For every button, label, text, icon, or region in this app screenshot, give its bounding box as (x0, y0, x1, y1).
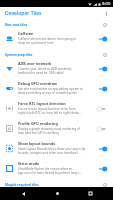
button[interactable]: Recents (80, 187, 100, 200)
staticText: Magisk required tiles (5, 183, 96, 187)
staticText: Debug GPU overdraw (18, 81, 58, 86)
staticText: Caffeine (18, 31, 34, 36)
button[interactable]: Info about System prop tiles (96, 50, 113, 60)
staticText: Developer Tiles (5, 10, 42, 17)
button[interactable]: Toggle (95, 124, 108, 133)
button[interactable]: Strict mode (0, 160, 113, 180)
staticText: StrictMode flashes the screen when an ap… (18, 167, 82, 175)
button[interactable]: Back (13, 187, 33, 200)
staticText: System prop tiles (5, 53, 96, 57)
staticText: Display a graph showing visual rendering… (18, 127, 80, 135)
staticText: Forces screen layout direction to be fro… (18, 107, 82, 115)
button[interactable]: Toggle (95, 64, 108, 73)
staticText: Profile GPU rendering (18, 121, 58, 126)
button[interactable]: More options (100, 7, 113, 20)
button[interactable]: Home (47, 187, 67, 200)
button[interactable]: Toggle (95, 164, 108, 173)
button[interactable]: Caffeine (0, 30, 113, 50)
button[interactable]: Show layout bounds (0, 140, 113, 160)
staticText: Force RTL layout direction (18, 101, 66, 106)
staticText: Connect your device to ADB wirelessly (w… (18, 67, 72, 75)
staticText: Strict mode (18, 161, 40, 166)
button[interactable]: Profile GPU rendering (0, 120, 113, 140)
staticText: Non-root tiles (5, 23, 96, 27)
button[interactable]: Toggle (95, 34, 108, 43)
staticText: 8:00 (102, 1, 111, 7)
button[interactable]: Info about Magisk required tiles (96, 180, 113, 190)
staticText: Show Layout Bounds tile to show your app… (18, 147, 86, 155)
button[interactable]: Debug GPU overdraw (0, 80, 113, 100)
staticText: See when and where an app adding system … (18, 87, 83, 95)
button[interactable]: Toggle (95, 104, 108, 113)
button[interactable]: Toggle (95, 144, 108, 153)
staticText: Show layout bounds (18, 141, 56, 146)
staticText: Caffeine tile prevent device from going … (18, 37, 77, 45)
button[interactable]: Force RTL layout direction (0, 100, 113, 120)
staticText: ADB over network (18, 61, 52, 66)
button[interactable]: ADB over network (0, 60, 113, 80)
button[interactable]: Toggle (95, 84, 108, 93)
button[interactable]: Info about Non-root tiles (96, 20, 113, 30)
